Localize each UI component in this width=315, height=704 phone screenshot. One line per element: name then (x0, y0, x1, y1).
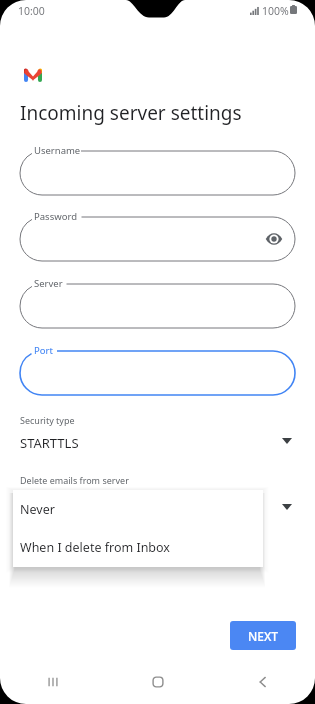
button[interactable]: Back (210, 660, 315, 704)
staticText: 10:00 (18, 4, 45, 18)
button[interactable]: Home (105, 660, 210, 704)
staticText: Never (20, 501, 55, 518)
staticText: NEXT (248, 628, 279, 644)
staticText: Security type (20, 414, 75, 426)
button[interactable]: Never (13, 490, 263, 528)
staticText: Password (34, 210, 77, 223)
button[interactable]: When I delete from Inbox (13, 528, 263, 566)
button[interactable]: NEXT (230, 621, 296, 650)
button[interactable]: Port (20, 351, 295, 395)
staticText: Delete emails from server (20, 474, 129, 486)
staticText: STARTTLS (20, 434, 79, 452)
button[interactable]: Server (20, 284, 295, 328)
staticText: 100% (262, 4, 289, 18)
button[interactable]: Recents (0, 660, 105, 704)
staticText: Incoming server settings (20, 100, 242, 126)
button[interactable]: Dropdown (277, 500, 297, 514)
staticText: Server (34, 277, 63, 290)
button[interactable]: Username (20, 151, 295, 195)
button[interactable]: Dropdown (277, 434, 297, 448)
staticText: When I delete from Inbox (20, 539, 170, 556)
staticText: Port (34, 344, 53, 357)
button[interactable]: Password (20, 217, 295, 261)
button[interactable]: Show password (265, 230, 283, 248)
staticText: Username (34, 144, 81, 157)
